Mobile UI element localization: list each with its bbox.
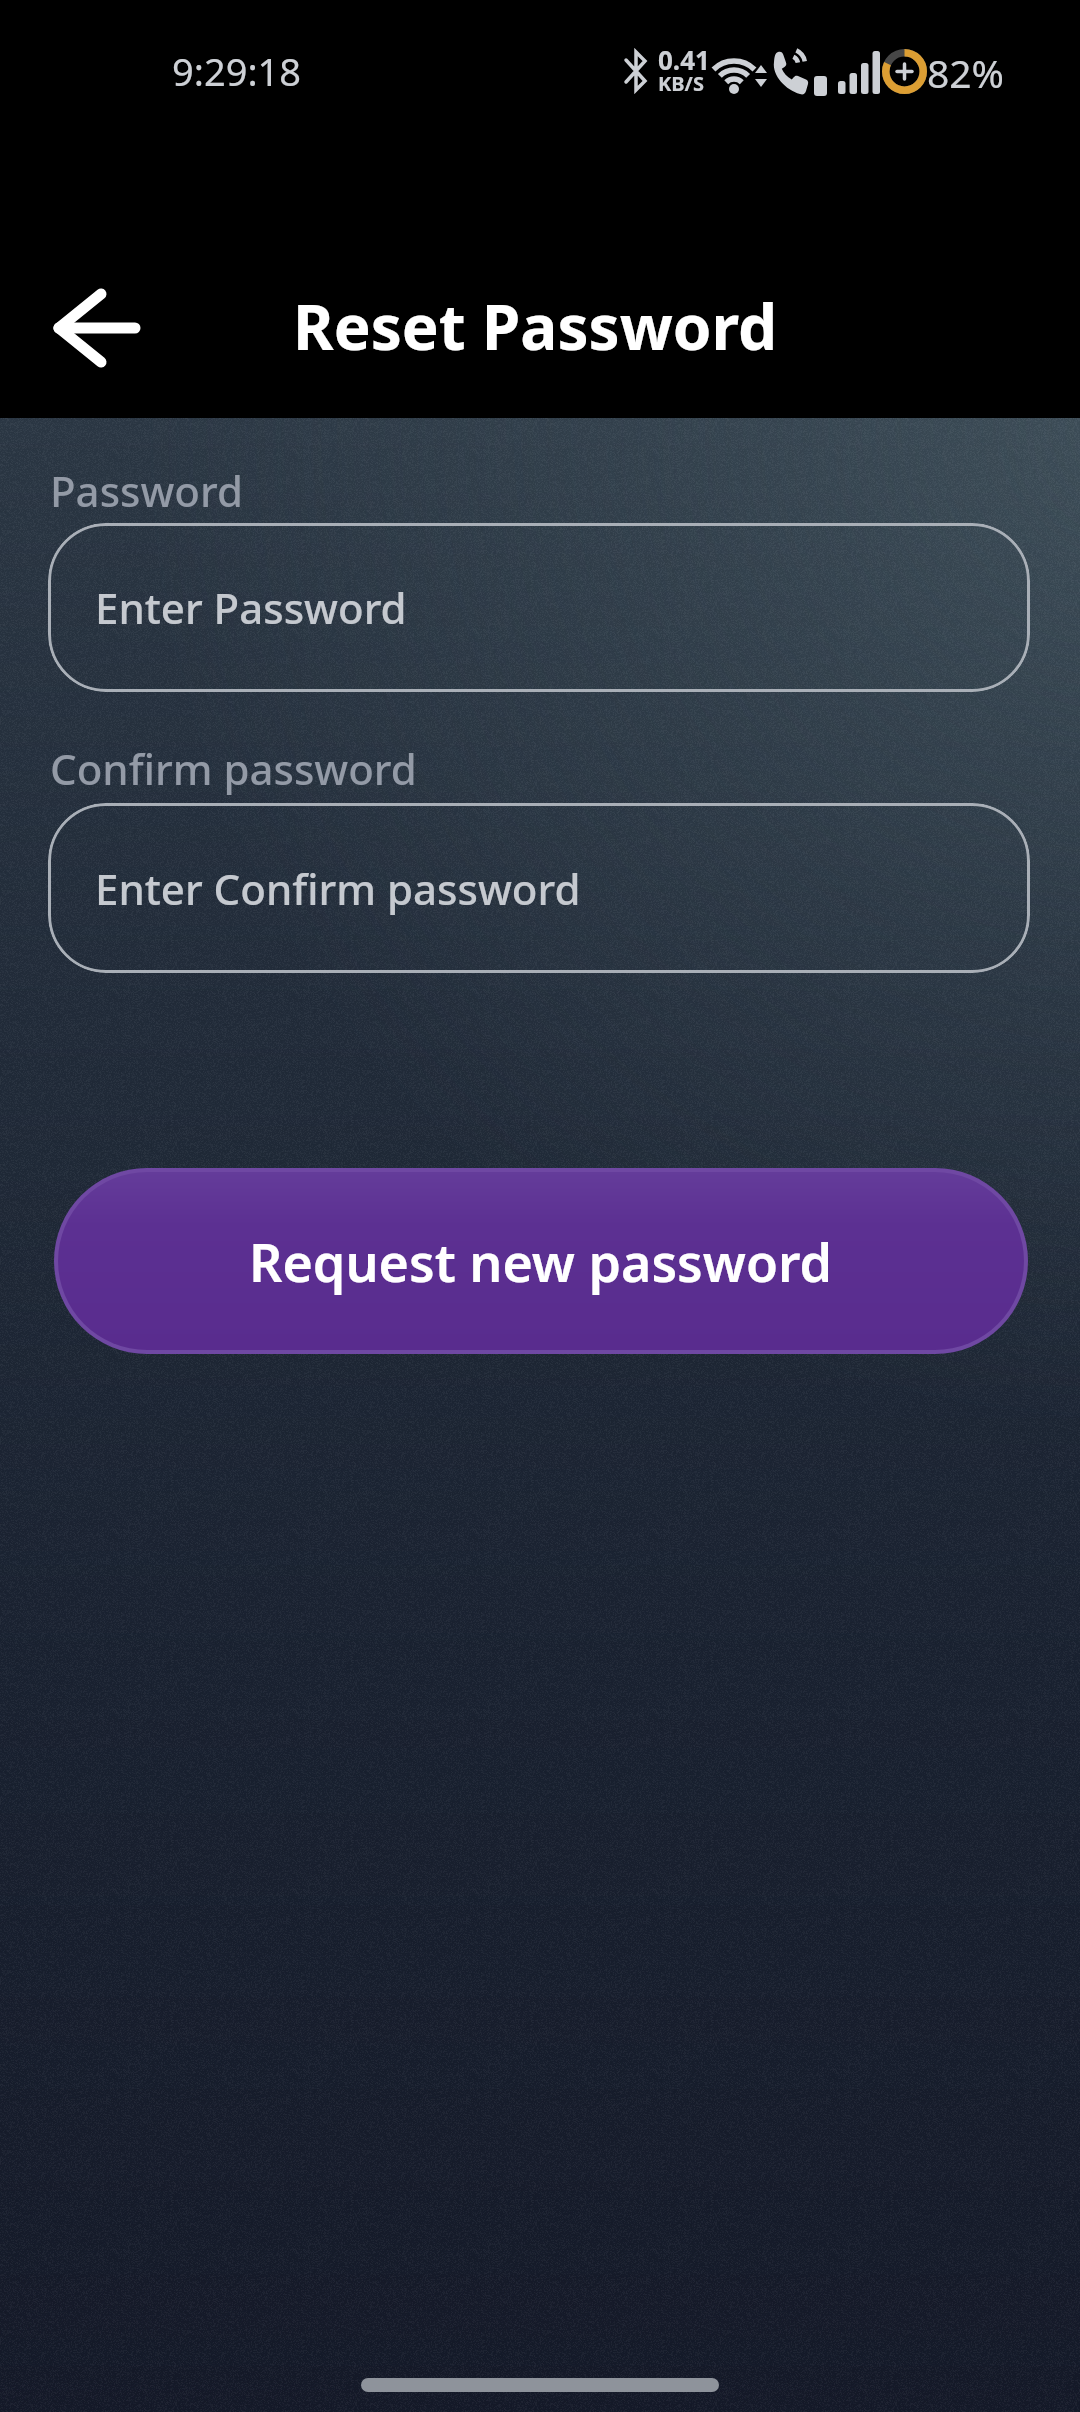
- button[interactable]: Request new password: [54, 1168, 1028, 1354]
- staticText: Reset Password: [293, 284, 778, 368]
- button[interactable]: [55, 290, 137, 366]
- staticText: 82%: [927, 46, 1005, 99]
- staticText: 0.41: [658, 42, 710, 77]
- staticText: KB/S: [658, 70, 704, 97]
- button[interactable]: Enter Confirm password: [48, 803, 1030, 973]
- staticText: Enter Password: [95, 579, 407, 636]
- staticText: Request new password: [249, 1226, 833, 1297]
- staticText: 9:29:18: [172, 45, 302, 97]
- staticText: Enter Confirm password: [95, 860, 581, 917]
- button[interactable]: Enter Password: [48, 523, 1030, 692]
- staticText: Confirm password: [50, 740, 417, 797]
- staticText: Password: [50, 462, 243, 519]
